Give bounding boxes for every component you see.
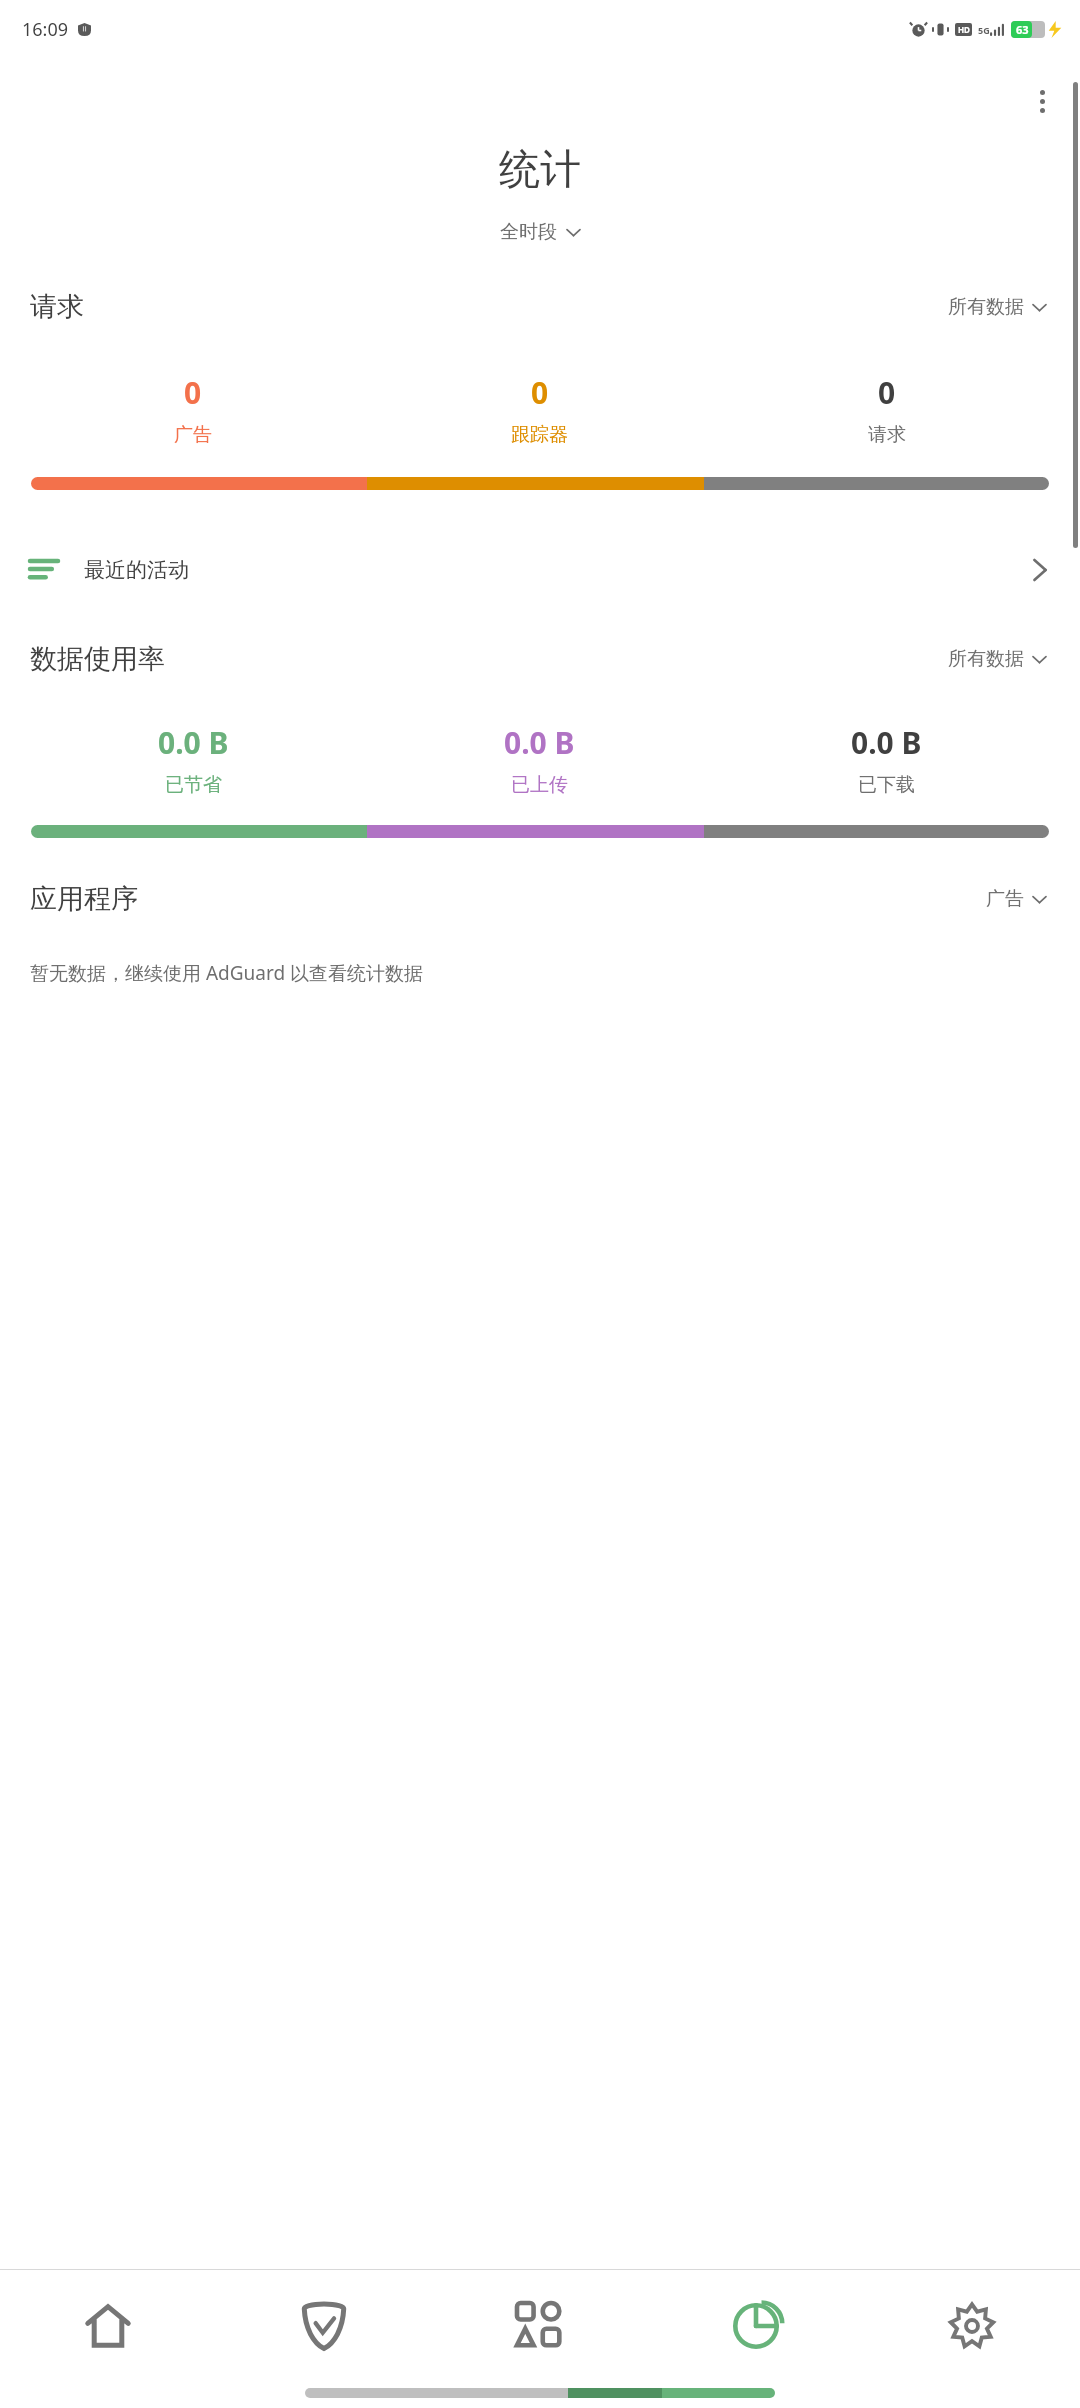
staticText: 0.0 B	[504, 722, 575, 763]
button[interactable]: 0.0 B	[20, 722, 366, 797]
staticText: 请求	[30, 290, 84, 324]
staticText: 16:09	[22, 17, 69, 42]
staticText: 0.0 B	[158, 722, 229, 763]
staticText: 0.0 B	[851, 722, 922, 763]
button[interactable]: Home	[0, 2270, 216, 2382]
button[interactable]: 0.0 B	[713, 722, 1060, 797]
staticText: 已上传	[511, 773, 568, 797]
button[interactable]: 0.0 B	[366, 722, 713, 797]
button[interactable]: 所有数据	[944, 291, 1050, 323]
staticText: 数据使用率	[30, 642, 165, 676]
staticText: 暂无数据，继续使用 AdGuard 以查看统计数据	[30, 960, 1050, 986]
staticText: 0	[184, 372, 202, 413]
button[interactable]: More options	[1018, 77, 1066, 125]
button[interactable]: 0	[713, 372, 1060, 447]
staticText: 已节省	[165, 773, 222, 797]
staticText: 全时段	[500, 220, 557, 244]
button[interactable]: Protection	[216, 2270, 432, 2382]
button[interactable]: Statistics	[648, 2270, 864, 2382]
button[interactable]: 最近的活动	[0, 538, 1080, 602]
staticText: 所有数据	[948, 647, 1024, 671]
staticText: 跟踪器	[511, 423, 568, 447]
staticText: 5G	[978, 24, 990, 36]
button[interactable]: 全时段	[0, 220, 1080, 244]
button[interactable]: 0	[20, 372, 366, 447]
button[interactable]: 广告	[982, 883, 1050, 915]
staticText: HD	[958, 24, 970, 35]
staticText: 63	[1016, 22, 1029, 37]
staticText: 请求	[868, 423, 906, 447]
staticText: 广告	[174, 423, 212, 447]
staticText: 所有数据	[948, 295, 1024, 319]
staticText: 应用程序	[30, 882, 138, 916]
staticText: 最近的活动	[84, 557, 189, 583]
staticText: 统计	[0, 144, 1080, 196]
staticText: 已下载	[858, 773, 915, 797]
staticText: 0	[878, 372, 896, 413]
button[interactable]: Settings	[864, 2270, 1080, 2382]
staticText: 广告	[986, 887, 1024, 911]
button[interactable]: 所有数据	[944, 643, 1050, 675]
button[interactable]: Apps	[432, 2270, 648, 2382]
button[interactable]: 0	[366, 372, 713, 447]
staticText: 0	[531, 372, 549, 413]
